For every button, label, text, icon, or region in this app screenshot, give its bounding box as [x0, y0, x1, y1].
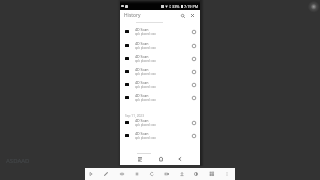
staticText: 4D Scan	[135, 27, 149, 32]
staticText: 4D Scan	[135, 54, 149, 59]
button[interactable]: 4D Scan	[119, 91, 200, 104]
staticText: 4D Scan	[135, 41, 149, 46]
staticText: apk placed: xxx	[135, 72, 156, 76]
button[interactable]: 4D Scan	[119, 25, 200, 38]
staticText: History	[124, 12, 141, 19]
button[interactable]: Recents	[135, 154, 145, 164]
button[interactable]: More options	[190, 42, 198, 50]
button[interactable]: Edit	[102, 170, 110, 178]
staticText: 4D Scan	[135, 80, 149, 85]
staticText: ASDAAD	[6, 157, 30, 165]
staticText: apk placed: xxx	[135, 136, 156, 140]
staticText: Sep 11, 2023	[125, 114, 144, 118]
button[interactable]: 4D Scan	[119, 52, 200, 65]
staticText: apk placed: xxx	[135, 85, 156, 89]
button[interactable]: View	[118, 170, 126, 178]
button[interactable]: More	[223, 170, 231, 178]
staticText: 4D Scan	[135, 93, 149, 98]
button[interactable]: More options	[190, 119, 198, 127]
staticText: apk placed: xxx	[135, 123, 156, 127]
button[interactable]: Brightness	[192, 170, 200, 178]
button[interactable]: More options	[190, 68, 198, 76]
button[interactable]: More options	[190, 132, 198, 140]
button[interactable]: More options	[190, 81, 198, 89]
staticText: apk placed: xxx	[135, 59, 156, 63]
button[interactable]: Play	[87, 170, 95, 178]
staticText: apk placed: xxx	[135, 32, 156, 36]
button[interactable]: More options	[190, 55, 198, 63]
button[interactable]: More options	[190, 94, 198, 102]
staticText: 33%	[172, 4, 180, 9]
button[interactable]: 4D Scan	[119, 129, 200, 142]
button[interactable]: Record	[163, 170, 171, 178]
staticText: 4D Scan	[135, 131, 149, 136]
staticText: 7:19 PM	[184, 4, 199, 9]
button[interactable]: Upload	[178, 170, 186, 178]
button[interactable]: Pause	[133, 170, 141, 178]
button[interactable]: Refresh	[148, 170, 156, 178]
button[interactable]: More options	[190, 28, 198, 36]
button[interactable]: Back	[175, 154, 185, 164]
button[interactable]: Home	[156, 154, 166, 164]
button[interactable]: 4D Scan	[119, 39, 200, 52]
staticText: apk placed: xxx	[135, 98, 156, 102]
button[interactable]: 4D Scan	[119, 78, 200, 91]
staticText: apk placed: xxx	[135, 46, 156, 50]
button[interactable]: 4D Scan	[119, 65, 200, 78]
button[interactable]: Close	[188, 11, 197, 20]
staticText: 4D Scan	[135, 118, 149, 123]
button[interactable]: 4D Scan	[119, 116, 200, 129]
staticText: 4D Scan	[135, 67, 149, 72]
button[interactable]: Grid	[208, 170, 216, 178]
button[interactable]: Search	[178, 11, 187, 20]
